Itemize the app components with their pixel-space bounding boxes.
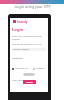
staticText: Login with OTP [15, 67, 29, 70]
staticText: Resend OTP [24, 73, 35, 76]
button[interactable]: LOGIN [23, 80, 36, 84]
staticText: Mobile Number [12, 48, 30, 51]
staticText: New to brandy? Register [12, 79, 34, 82]
staticText: brandy [17, 20, 28, 24]
staticText: Login [12, 27, 24, 33]
staticText: and we will send you an OTP [12, 43, 42, 46]
staticText: LOGIN [26, 81, 33, 84]
button[interactable]: Mobile Number [12, 48, 46, 51]
button[interactable]: Password [33, 67, 45, 70]
button[interactable]: Login with OTP [12, 67, 29, 70]
staticText: Password [12, 56, 23, 59]
staticText: Enter your registered mobile number [12, 35, 46, 41]
staticText: Password [36, 67, 45, 70]
button[interactable]: Resend OTP [23, 73, 35, 76]
staticText: Login using your OTP [14, 4, 51, 9]
